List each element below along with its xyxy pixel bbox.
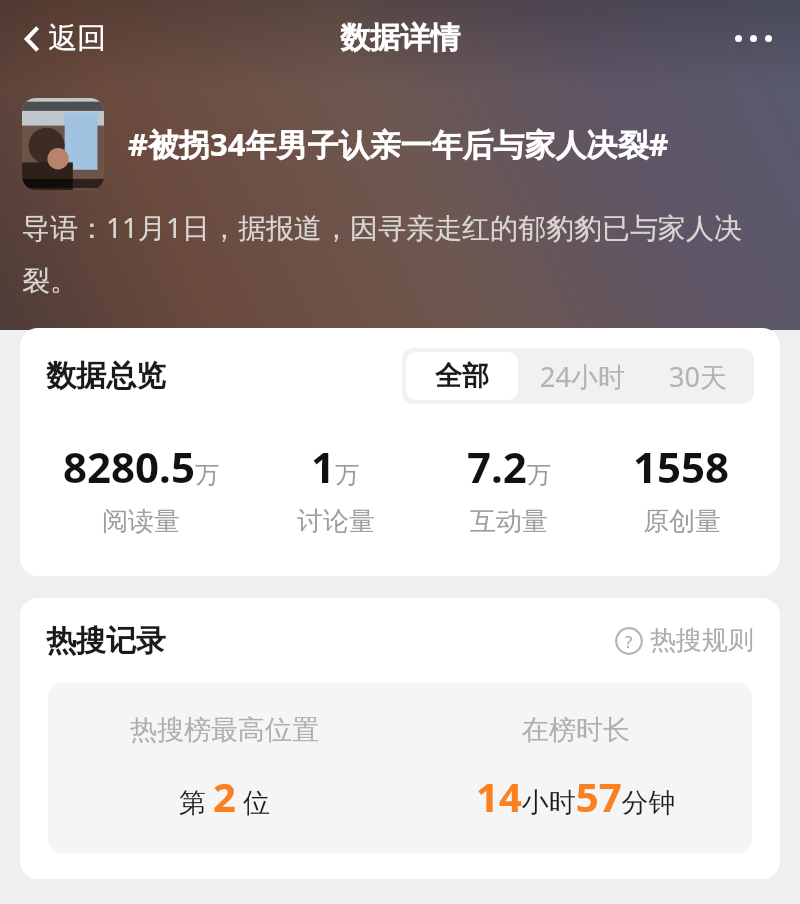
staticText: 互动量 (470, 505, 548, 538)
staticText: 1558 (633, 438, 730, 495)
button[interactable]: 1万 (249, 438, 422, 538)
staticText: 24小时 (540, 358, 625, 395)
button[interactable]: Topic thumbnail (22, 98, 104, 190)
staticText: 第 2 位 (179, 769, 270, 823)
button[interactable]: 1558 (595, 438, 768, 538)
staticText: 1万 (311, 438, 360, 495)
staticText: 7.2万 (467, 438, 551, 495)
staticText: 热搜规则 (650, 624, 754, 657)
button[interactable]: 24小时 (522, 352, 642, 400)
button[interactable]: 返回 (14, 14, 114, 63)
staticText: 14小时57分钟 (476, 769, 676, 823)
staticText: 原创量 (643, 505, 721, 538)
staticText: 阅读量 (102, 505, 180, 538)
staticText: 数据总览 (46, 357, 166, 395)
staticText: 8280.5万 (63, 438, 219, 495)
staticText: 数据详情 (340, 19, 460, 57)
button[interactable]: 全部 (406, 352, 518, 400)
staticText: 讨论量 (297, 505, 375, 538)
staticText: 全部 (435, 359, 489, 393)
staticText: #被拐34年男子认亲一年后与家人决裂# (128, 123, 780, 165)
button[interactable]: More options (725, 23, 782, 54)
staticText: 热搜榜最高位置 (130, 713, 319, 747)
button[interactable]: ? (611, 620, 758, 661)
staticText: ? (625, 630, 633, 653)
button[interactable]: 8280.5万 (32, 438, 249, 538)
button[interactable]: 30天 (642, 352, 754, 400)
staticText: 在榜时长 (522, 713, 630, 747)
staticText: 热搜记录 (46, 622, 166, 660)
staticText: 返回 (48, 20, 106, 57)
staticText: 导语：11月1日，据报道，因寻亲走红的郁豹豹已与家人决裂。 (22, 208, 744, 298)
button[interactable]: 7.2万 (422, 438, 595, 538)
staticText: 30天 (669, 358, 727, 395)
